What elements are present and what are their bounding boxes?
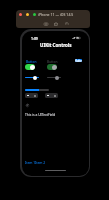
button[interactable]: Rotate <box>64 21 69 26</box>
button[interactable]: Button <box>47 60 58 64</box>
staticText: iPhone 11 — iOS 14.5 <box>38 12 74 17</box>
button[interactable]: Home <box>53 21 58 26</box>
button[interactable]: Item 2 <box>35 160 46 164</box>
button[interactable]: Screenshot <box>43 21 48 26</box>
button[interactable]: Button <box>26 60 37 64</box>
button[interactable]: Item 1 <box>25 160 36 164</box>
button[interactable]: Decrement <box>25 93 31 98</box>
staticText: UIKit Controls <box>40 42 72 47</box>
staticText: Item 1 <box>25 160 36 164</box>
staticText: Item 2 <box>35 160 46 164</box>
button[interactable]: Minimize <box>26 13 29 16</box>
button[interactable]: Slider <box>25 75 39 80</box>
button[interactable]: Maximize <box>33 13 36 16</box>
button[interactable]: Slider <box>47 75 61 80</box>
button[interactable]: Close <box>19 13 22 16</box>
button[interactable]: Toggle <box>47 64 57 70</box>
button[interactable]: Decrement <box>45 93 51 98</box>
other: Loading <box>26 104 29 107</box>
button[interactable]: Increment <box>51 93 58 98</box>
button[interactable]: Increment <box>31 93 38 98</box>
staticText: 1:09 <box>31 36 38 41</box>
staticText: Button <box>75 59 82 62</box>
staticText: Button <box>47 60 58 64</box>
button[interactable]: Toggle <box>25 64 35 70</box>
staticText: Button <box>26 60 37 64</box>
button[interactable]: Button <box>75 59 82 62</box>
button[interactable]: This is a UITextField <box>25 112 56 116</box>
